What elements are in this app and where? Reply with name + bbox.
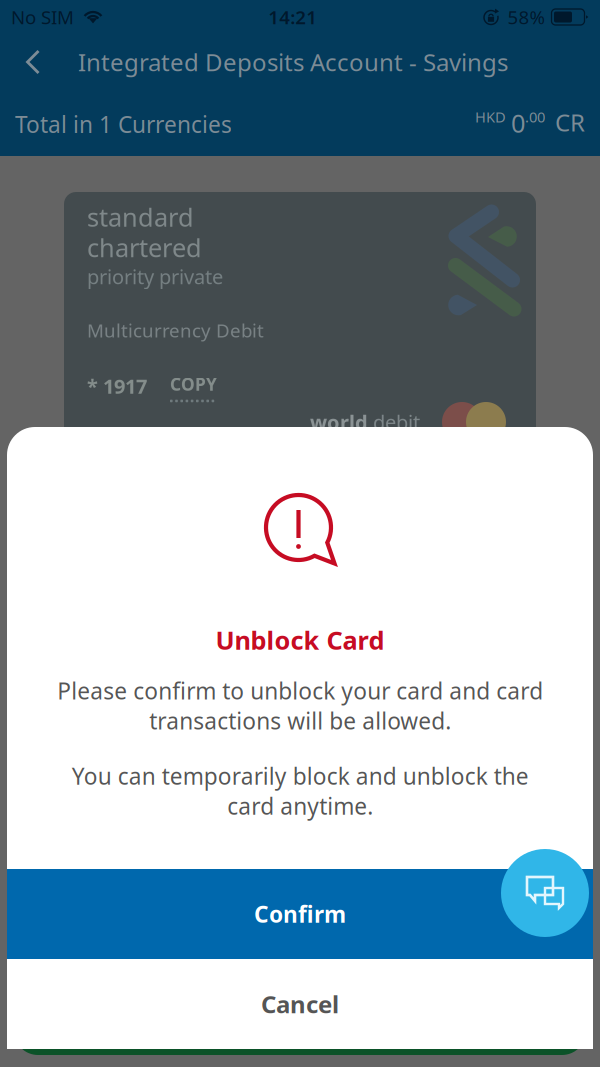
staticText: .00 xyxy=(525,107,545,127)
staticText: debit xyxy=(373,409,420,435)
staticText: COPY xyxy=(170,373,217,396)
staticText: world xyxy=(310,409,373,435)
staticText: Multicurrency Debit xyxy=(87,318,264,343)
staticText: Integrated Deposits Account - Savings xyxy=(78,46,508,78)
staticText: Unblock Card xyxy=(215,623,384,657)
staticText: HKD xyxy=(475,107,506,127)
button[interactable]: Confirm xyxy=(7,869,593,959)
staticText: Cancel xyxy=(261,988,339,1020)
staticText: Confirm xyxy=(254,899,346,929)
staticText: No SIM xyxy=(11,5,74,29)
staticText: standard xyxy=(87,200,194,234)
staticText: 14:21 xyxy=(268,5,317,29)
button[interactable]: Back xyxy=(0,35,64,88)
staticText: priority private xyxy=(87,263,223,290)
button[interactable]: Chat xyxy=(501,849,589,937)
staticText: chartered xyxy=(87,231,202,264)
staticText: CR xyxy=(555,106,585,138)
staticText: * 1917 xyxy=(87,373,147,399)
staticText: 0 xyxy=(511,106,525,140)
staticText: 58% xyxy=(507,5,545,29)
staticText: Total in 1 Currencies xyxy=(15,109,232,139)
staticText: Please confirm to unblock your card and … xyxy=(57,676,543,736)
staticText: You can temporarily block and unblock th… xyxy=(71,761,528,821)
button[interactable]: Cancel xyxy=(7,959,593,1049)
